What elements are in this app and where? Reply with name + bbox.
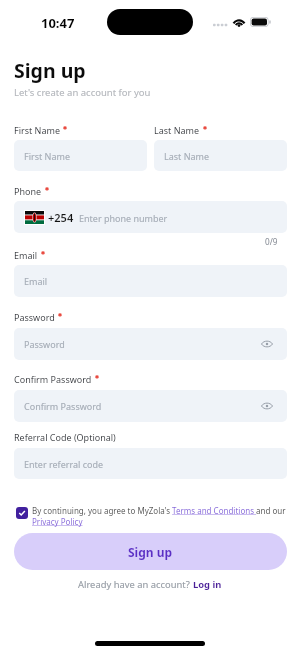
staticText: Let's create an account for you	[14, 86, 151, 99]
staticText: Phone	[14, 185, 42, 197]
button[interactable]: Confirm Password	[14, 390, 287, 422]
button[interactable]: Last Name	[154, 140, 287, 171]
button[interactable]: Show password	[261, 338, 273, 350]
staticText: Already have an account?	[78, 578, 193, 591]
staticText: Email	[14, 249, 38, 261]
staticText: Log in	[193, 578, 222, 591]
button[interactable]: Log in	[193, 578, 222, 591]
staticText: Enter phone number	[79, 212, 168, 224]
staticText: Last Name	[154, 124, 200, 136]
staticText: First Name	[14, 124, 60, 136]
button[interactable]: Password	[14, 328, 287, 360]
button[interactable]: +254	[14, 201, 287, 233]
staticText: Password	[14, 311, 55, 323]
button[interactable]: First Name	[14, 140, 147, 171]
staticText: Sign up	[128, 544, 173, 560]
staticText: +254	[48, 210, 74, 225]
staticText: Referral Code (Optional)	[14, 431, 116, 443]
staticText: Confirm Password	[24, 400, 102, 412]
button[interactable]: Agree to terms	[16, 507, 28, 519]
staticText: 10:47	[41, 14, 75, 32]
button[interactable]: Email	[14, 265, 287, 297]
button[interactable]: Enter referral code	[14, 448, 287, 479]
button[interactable]: Sign up	[14, 533, 287, 570]
staticText: By continuing, you agree to MyZola's Ter…	[32, 505, 289, 527]
staticText: Password	[24, 338, 65, 350]
staticText: Sign up	[14, 57, 86, 84]
staticText: Confirm Password	[14, 373, 92, 385]
staticText: Last Name	[164, 150, 210, 162]
button[interactable]: Show password	[261, 400, 273, 412]
staticText: First Name	[24, 150, 70, 162]
staticText: 0/9	[265, 236, 278, 247]
staticText: Email	[24, 275, 48, 287]
staticText: Enter referral code	[24, 458, 104, 470]
